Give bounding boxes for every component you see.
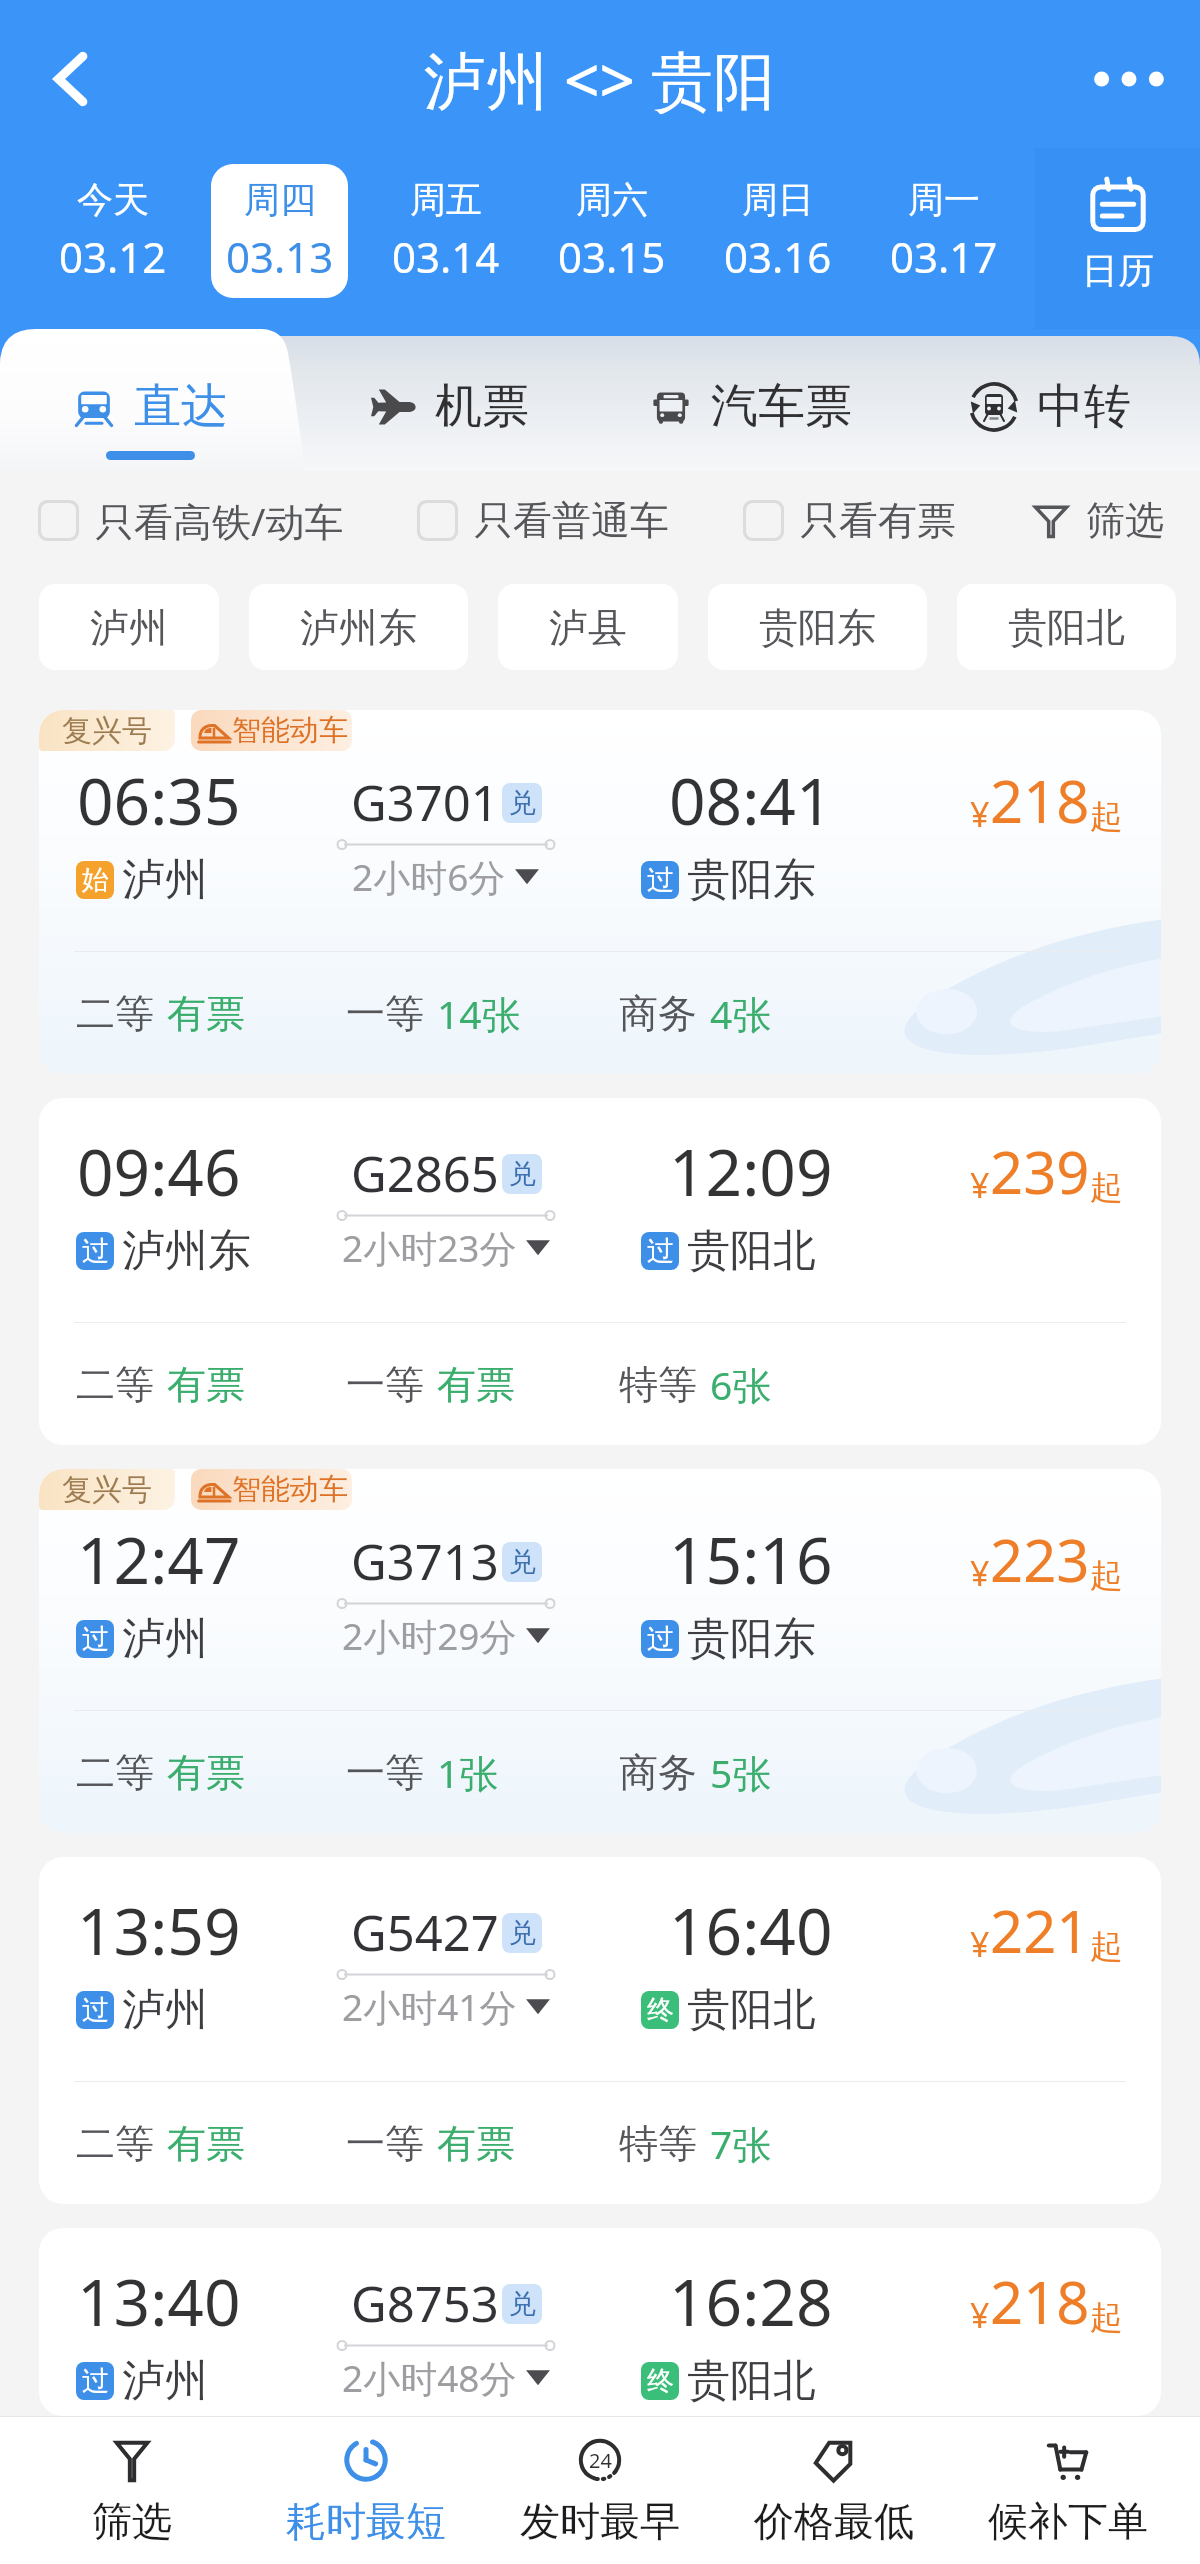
staticText: 有票	[167, 2119, 245, 2168]
staticText: 有票	[167, 1748, 245, 1797]
staticText: 周日	[742, 177, 814, 222]
staticText: 筛选	[1086, 496, 1164, 545]
button[interactable]: 价格最低	[717, 2417, 951, 2564]
staticText: 贵阳东	[687, 853, 816, 907]
staticText: 泸州东	[122, 1224, 251, 1278]
staticText: 贵阳北	[687, 2354, 816, 2408]
staticText: 二等	[76, 2119, 154, 2168]
staticText: 二等	[76, 1360, 154, 1409]
button[interactable]: 日历	[1035, 148, 1200, 329]
staticText: 08:41	[669, 757, 833, 844]
button[interactable]: 中转	[900, 329, 1200, 471]
button[interactable]: 直达	[0, 329, 300, 471]
staticText: 贵阳东	[687, 1612, 816, 1666]
staticText: 12:09	[669, 1128, 833, 1215]
button[interactable]: 机票	[300, 329, 600, 471]
staticText: 1张	[437, 1746, 499, 1799]
staticText: 泸县	[549, 603, 627, 652]
button[interactable]: 耗时最短	[249, 2417, 483, 2564]
staticText: 15:16	[669, 1516, 833, 1603]
staticText: 09:46	[77, 1128, 241, 1215]
staticText: 今天	[77, 177, 149, 222]
button[interactable]: 只看有票	[743, 496, 956, 545]
staticText: 239	[990, 1132, 1090, 1211]
button[interactable]: 筛选	[1030, 496, 1164, 545]
button[interactable]: 复兴号	[39, 710, 1161, 1074]
staticText: 发时最早	[520, 2496, 680, 2546]
staticText: 2小时6分	[352, 851, 506, 902]
staticText: 贵阳东	[759, 603, 876, 652]
button[interactable]: 贵阳北	[957, 584, 1176, 670]
button[interactable]: More options	[1082, 32, 1176, 126]
staticText: 泸州	[122, 853, 208, 907]
button[interactable]: 周五	[378, 164, 514, 298]
button[interactable]: 只看普通车	[417, 496, 669, 545]
button[interactable]: Back	[24, 32, 118, 126]
staticText: 2小时23分	[342, 1222, 517, 1273]
button[interactable]: 09:46	[39, 1098, 1161, 1445]
staticText: G3701	[351, 769, 499, 836]
staticText: 智能动车	[232, 1471, 348, 1508]
staticText: 2小时29分	[342, 1610, 517, 1661]
staticText: 商务	[619, 1748, 697, 1797]
staticText: 7张	[710, 2117, 772, 2170]
staticText: 03.17	[890, 228, 998, 285]
button[interactable]: 泸州东	[249, 584, 468, 670]
staticText: 兑	[509, 1157, 536, 1191]
button[interactable]: 周四	[211, 164, 348, 298]
button[interactable]: 今天	[44, 164, 181, 298]
staticText: 周五	[410, 177, 482, 222]
staticText: 直达	[134, 377, 228, 436]
button[interactable]: 周六	[544, 164, 680, 298]
button[interactable]: 候补下单	[951, 2417, 1185, 2564]
staticText: 12:47	[77, 1516, 241, 1603]
staticText: 智能动车	[232, 712, 348, 749]
staticText: 泸州	[122, 1612, 208, 1666]
staticText: 日历	[1082, 248, 1154, 293]
staticText: 过	[82, 2364, 109, 2398]
staticText: 终	[647, 2364, 674, 2398]
staticText: 03.13	[226, 228, 334, 285]
staticText: 03.14	[392, 228, 500, 285]
staticText: 贵阳北	[687, 1983, 816, 2037]
button[interactable]: 周一	[876, 164, 1012, 298]
staticText: 一等	[346, 1360, 424, 1409]
staticText: 起	[1090, 796, 1123, 838]
staticText: 过	[647, 1622, 674, 1656]
staticText: 兑	[509, 1916, 536, 1950]
staticText: 贵阳北	[1008, 603, 1125, 652]
staticText: 复兴号	[62, 1471, 152, 1508]
staticText: 泸州	[122, 1983, 208, 2037]
button[interactable]: 汽车票	[600, 329, 900, 471]
staticText: 一等	[346, 1748, 424, 1797]
staticText: 06:35	[77, 757, 241, 844]
staticText: ¥	[970, 1921, 990, 1967]
staticText: 泸州	[122, 2354, 208, 2408]
staticText: 有票	[167, 1360, 245, 1409]
button[interactable]: 13:40	[39, 2228, 1161, 2416]
button[interactable]: 泸州	[39, 584, 219, 670]
staticText: 16:40	[669, 1887, 833, 1974]
staticText: 03.15	[558, 228, 666, 285]
button[interactable]: 24	[483, 2417, 717, 2564]
button[interactable]: 贵阳东	[708, 584, 927, 670]
staticText: 贵阳北	[687, 1224, 816, 1278]
staticText: 一等	[346, 2119, 424, 2168]
staticText: G3713	[351, 1528, 499, 1595]
button[interactable]: 周日	[710, 164, 846, 298]
staticText: 过	[82, 1993, 109, 2027]
staticText: 兑	[509, 2287, 536, 2321]
button[interactable]: 13:59	[39, 1857, 1161, 2204]
staticText: 218	[990, 761, 1090, 840]
staticText: 14张	[437, 987, 521, 1040]
button[interactable]: 只看高铁/动车	[38, 494, 344, 547]
staticText: 周六	[576, 177, 648, 222]
button[interactable]: 泸县	[498, 584, 678, 670]
staticText: 周一	[908, 177, 980, 222]
staticText: 过	[647, 863, 674, 897]
staticText: 03.16	[724, 228, 832, 285]
staticText: 终	[647, 1993, 674, 2027]
button[interactable]: 复兴号	[39, 1469, 1161, 1833]
staticText: 223	[990, 1520, 1090, 1599]
button[interactable]: 筛选	[15, 2417, 249, 2564]
